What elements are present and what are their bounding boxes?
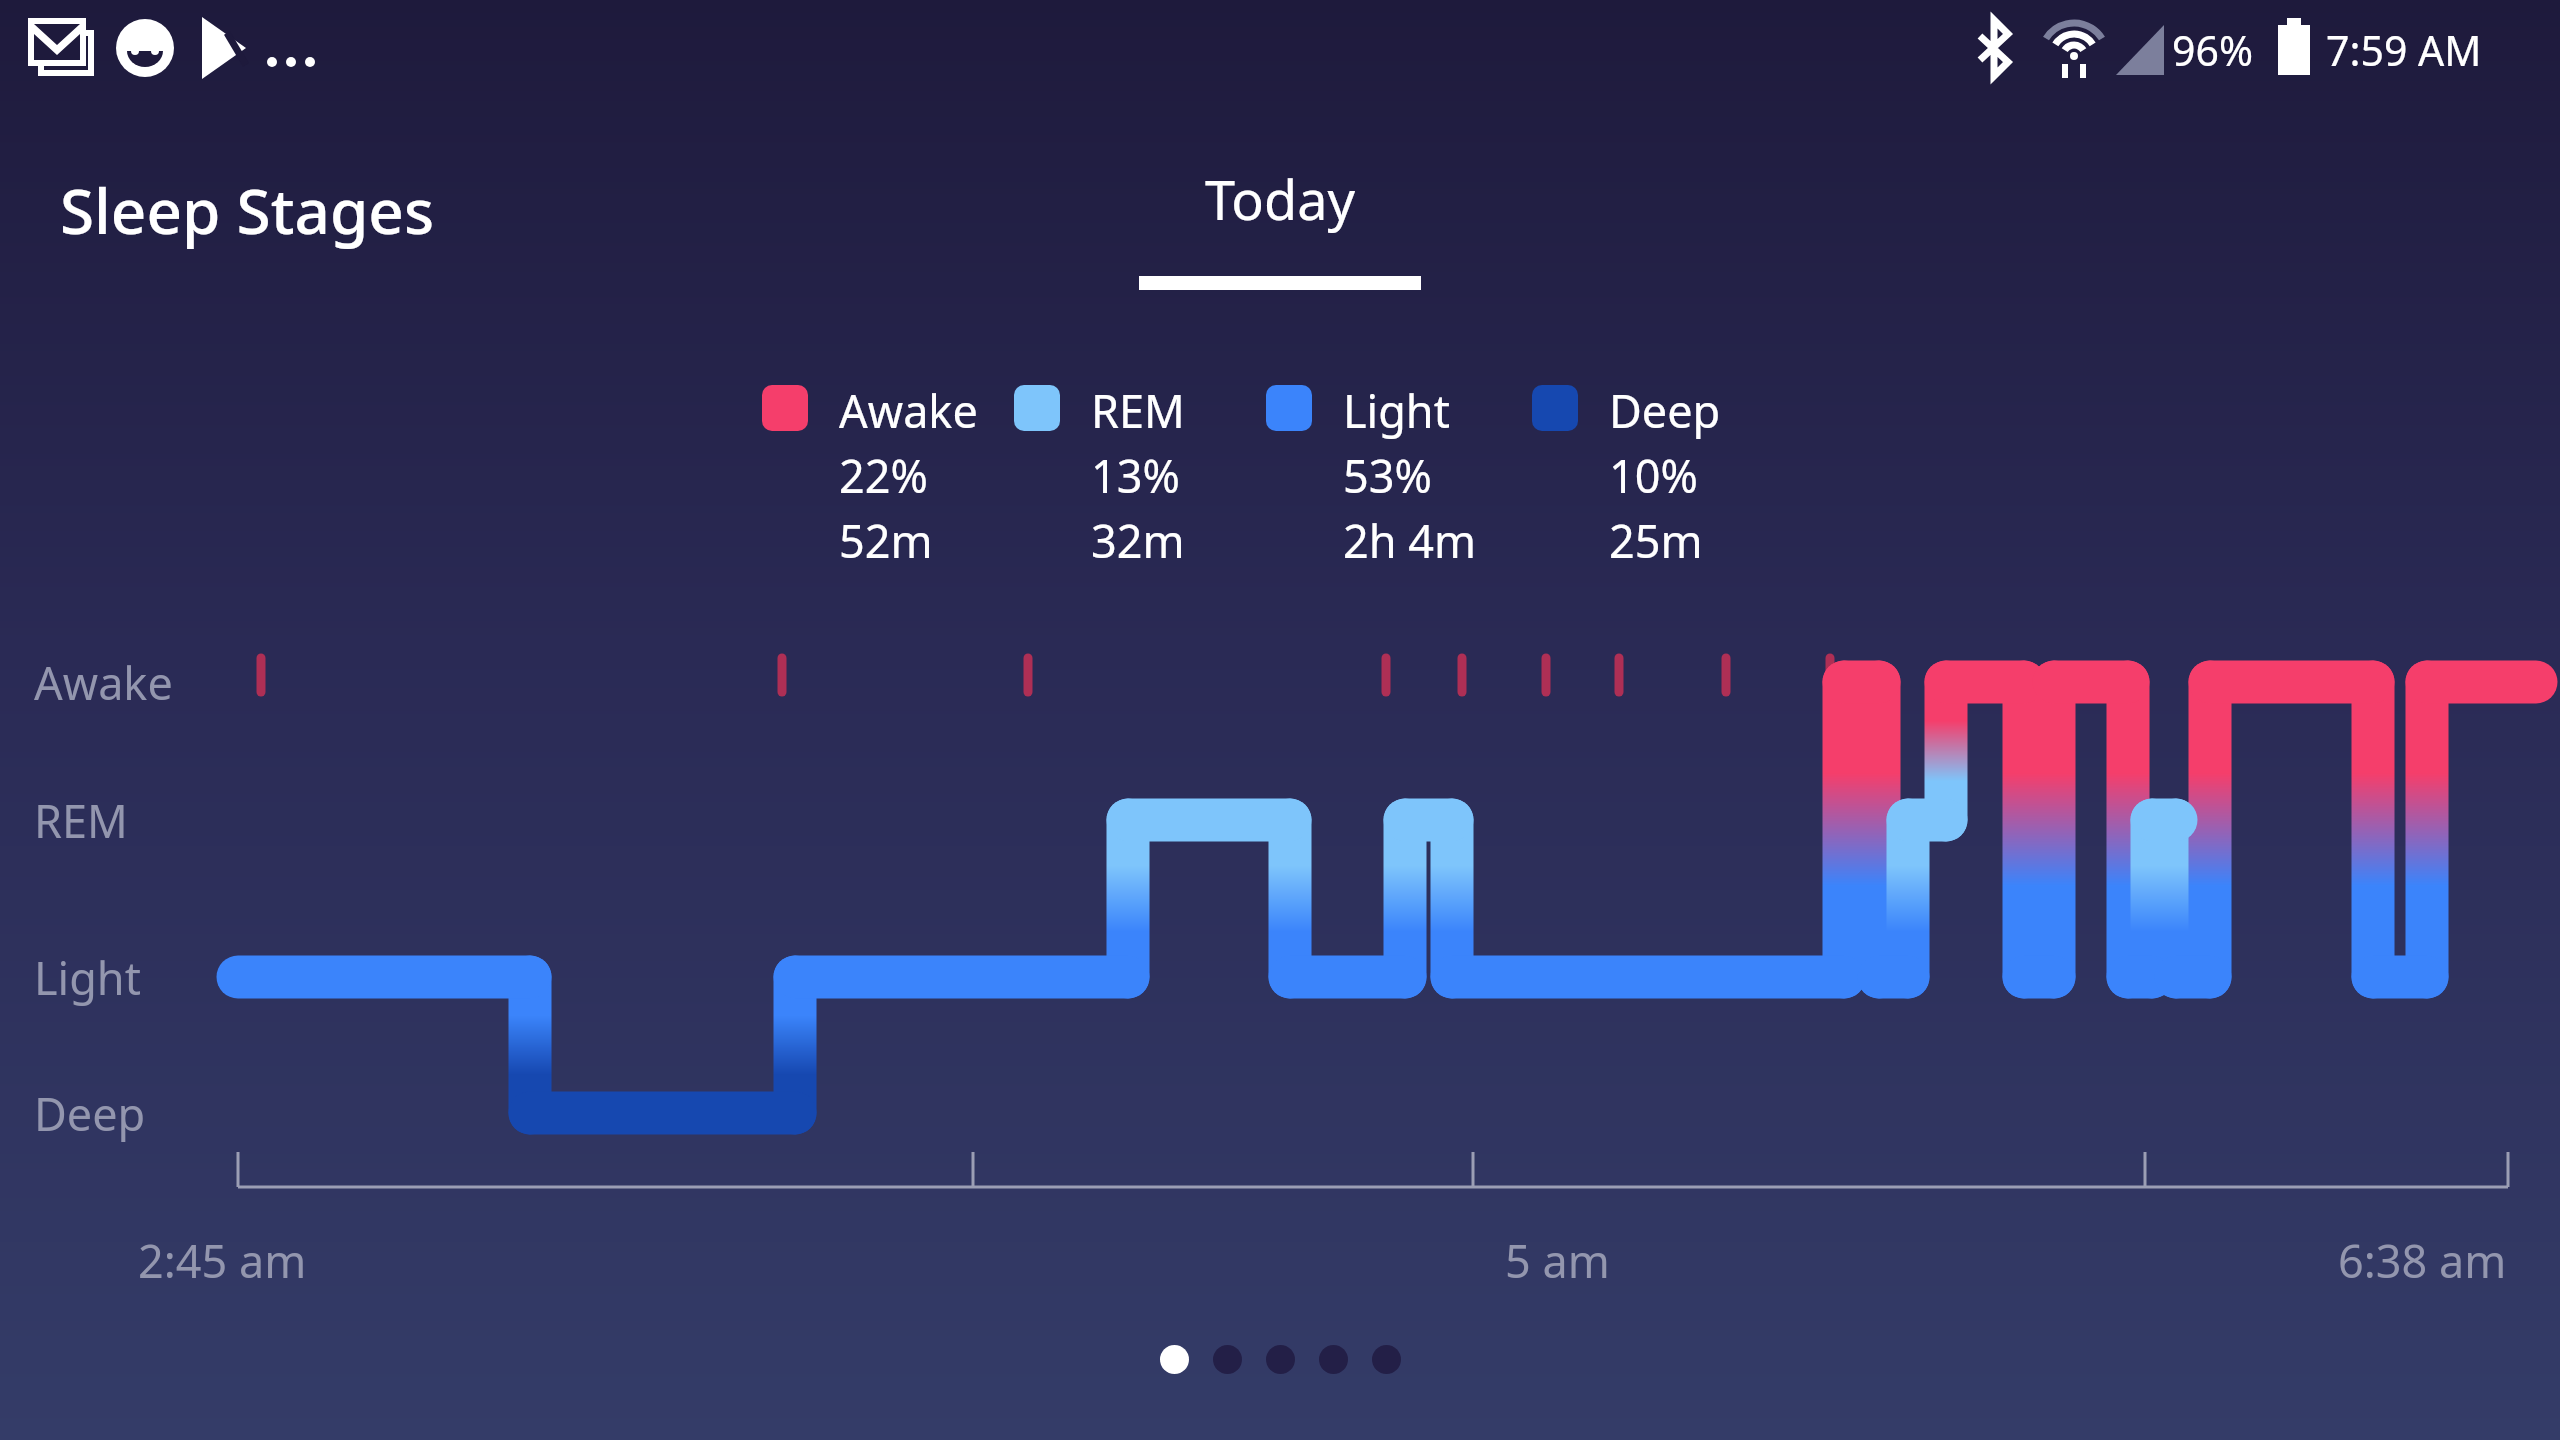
- button[interactable]: Page 5: [1372, 1345, 1401, 1374]
- staticText: Awake: [34, 652, 173, 713]
- staticText: 2h 4m: [1343, 510, 1477, 571]
- staticText: 32m: [1091, 510, 1185, 571]
- staticText: 96%: [2172, 22, 2253, 78]
- staticText: Light: [1343, 380, 1450, 441]
- button[interactable]: Page 3: [1266, 1345, 1295, 1374]
- staticText: 53%: [1343, 445, 1432, 506]
- staticText: 2:45 am: [138, 1230, 307, 1291]
- staticText: 7:59 AM: [2326, 22, 2482, 78]
- staticText: 6:38 am: [2338, 1230, 2507, 1291]
- staticText: Deep: [34, 1083, 146, 1144]
- staticText: 5 am: [1505, 1230, 1610, 1291]
- staticText: 25m: [1609, 510, 1703, 571]
- staticText: 13%: [1091, 445, 1180, 506]
- staticText: Awake: [839, 380, 978, 441]
- button[interactable]: Light: [1266, 380, 1532, 571]
- staticText: Sleep Stages: [60, 168, 435, 252]
- button[interactable]: Deep: [1532, 380, 1772, 571]
- button[interactable]: Today: [1120, 162, 1440, 290]
- button[interactable]: Page 4: [1319, 1345, 1348, 1374]
- staticText: Light: [34, 947, 141, 1008]
- button[interactable]: Page 1: [1160, 1345, 1189, 1374]
- staticText: Today: [1205, 162, 1355, 236]
- staticText: Deep: [1609, 380, 1721, 441]
- button[interactable]: Awake: [762, 380, 1014, 571]
- staticText: 10%: [1609, 445, 1698, 506]
- staticText: REM: [34, 790, 128, 851]
- staticText: 52m: [839, 510, 933, 571]
- staticText: REM: [1091, 380, 1185, 441]
- staticText: 22%: [839, 445, 928, 506]
- button[interactable]: REM: [1014, 380, 1266, 571]
- button[interactable]: Page 2: [1213, 1345, 1242, 1374]
